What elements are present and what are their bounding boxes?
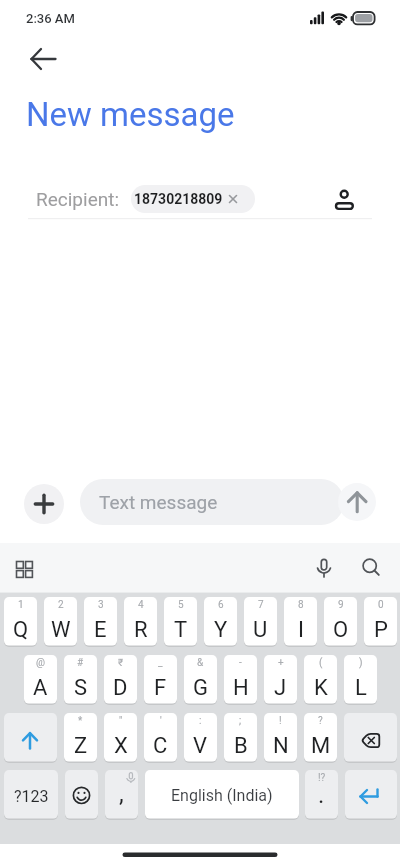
button[interactable] — [24, 484, 64, 524]
button[interactable]: * — [64, 713, 97, 763]
button[interactable]: 3 — [84, 597, 117, 647]
staticText: H — [233, 675, 249, 701]
button[interactable] — [338, 483, 376, 521]
button[interactable]: 9 — [324, 597, 357, 647]
staticText: - — [239, 657, 242, 669]
button[interactable]: " — [104, 713, 137, 763]
staticText: R — [134, 617, 148, 643]
staticText: M — [311, 733, 331, 759]
staticText: 9 — [338, 599, 344, 611]
staticText: . — [318, 781, 325, 809]
button[interactable] — [8, 554, 56, 588]
staticText: E — [94, 617, 107, 643]
staticText: J — [274, 675, 287, 701]
staticText: 3 — [98, 599, 104, 611]
staticText: U — [253, 617, 268, 643]
button[interactable]: ) — [344, 655, 377, 705]
staticText: @ — [36, 657, 45, 669]
button[interactable]: !? — [305, 770, 338, 820]
staticText: B — [234, 733, 248, 759]
staticText: Text message — [99, 491, 218, 513]
button[interactable]: _ — [144, 655, 177, 705]
button[interactable]: ₹ — [104, 655, 137, 705]
button[interactable]: & — [184, 655, 217, 705]
staticText: F — [154, 675, 167, 701]
staticText: ?123 — [14, 787, 49, 806]
staticText: 2:36 AM — [26, 11, 75, 26]
staticText: K — [314, 675, 328, 701]
staticText: ) — [359, 657, 363, 669]
button[interactable]: ?123 — [4, 770, 58, 820]
button[interactable] — [330, 180, 358, 214]
staticText: 7 — [258, 599, 264, 611]
button[interactable]: @ — [24, 655, 57, 705]
button[interactable]: + — [264, 655, 297, 705]
staticText: New message — [26, 95, 235, 134]
button[interactable]: ( — [304, 655, 337, 705]
staticText: P — [374, 617, 388, 643]
button[interactable] — [344, 713, 397, 763]
staticText: X — [114, 733, 128, 759]
staticText: O — [333, 617, 349, 643]
button[interactable]: 4 — [124, 597, 157, 647]
staticText: 0 — [378, 599, 384, 611]
staticText: L — [355, 675, 367, 701]
button[interactable]: ; — [224, 713, 257, 763]
button[interactable]: ' — [144, 713, 177, 763]
staticText: " — [119, 715, 123, 727]
button[interactable]: Text message — [80, 479, 344, 525]
staticText: D — [113, 675, 128, 701]
button[interactable] — [352, 550, 390, 586]
staticText: T — [174, 617, 188, 643]
button[interactable]: 2 — [44, 597, 77, 647]
button[interactable]: 7 — [244, 597, 277, 647]
button[interactable]: # — [64, 655, 97, 705]
staticText: Recipient: — [36, 188, 120, 210]
button[interactable] — [306, 552, 342, 586]
staticText: 8 — [298, 599, 304, 611]
staticText: English (India) — [171, 786, 273, 805]
staticText: 18730218809 — [134, 191, 223, 207]
button[interactable]: 1 — [4, 597, 37, 647]
staticText: , — [119, 780, 124, 808]
staticText: G — [193, 675, 208, 701]
staticText: Y — [214, 617, 228, 643]
button[interactable]: 5 — [164, 597, 197, 647]
staticText: 6 — [218, 599, 224, 611]
staticText: Z — [74, 733, 88, 759]
staticText: + — [278, 657, 284, 669]
staticText: ; — [239, 715, 242, 727]
button[interactable]: 8 — [284, 597, 317, 647]
staticText: ₹ — [118, 657, 124, 669]
button[interactable]: : — [184, 713, 217, 763]
button[interactable]: 18730218809 — [131, 185, 255, 213]
button[interactable]: 0 — [364, 597, 397, 647]
staticText: 4 — [138, 599, 144, 611]
staticText: V — [193, 733, 208, 759]
staticText: ( — [319, 657, 323, 669]
staticText: ' — [160, 715, 162, 727]
staticText: : — [199, 715, 202, 727]
staticText: ! — [279, 715, 282, 727]
button[interactable]: , — [105, 770, 138, 820]
staticText: & — [197, 657, 204, 669]
staticText: 2 — [58, 599, 64, 611]
staticText: I — [298, 617, 304, 643]
staticText: _ — [158, 657, 163, 669]
staticText: W — [51, 617, 71, 643]
button[interactable]: - — [224, 655, 257, 705]
staticText: 1 — [18, 599, 24, 611]
button[interactable]: 6 — [204, 597, 237, 647]
staticText: !? — [318, 772, 326, 784]
staticText: N — [273, 733, 289, 759]
button[interactable]: English (India) — [145, 770, 299, 820]
button[interactable]: ? — [304, 713, 337, 763]
staticText: ? — [318, 715, 323, 727]
button[interactable] — [4, 713, 57, 763]
button[interactable] — [20, 44, 64, 74]
button[interactable]: ! — [264, 713, 297, 763]
button[interactable] — [345, 770, 397, 820]
button[interactable] — [65, 770, 98, 820]
staticText: * — [78, 715, 83, 727]
staticText: # — [77, 657, 84, 669]
